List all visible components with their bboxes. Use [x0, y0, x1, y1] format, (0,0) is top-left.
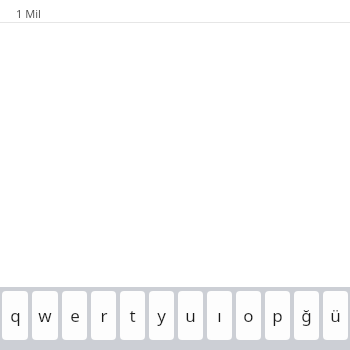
button[interactable]: 1 Mil: [0, 5, 350, 22]
staticText: u: [185, 304, 196, 327]
button[interactable]: r: [91, 291, 116, 340]
staticText: q: [10, 304, 21, 327]
button[interactable]: ü: [323, 291, 348, 340]
button[interactable]: t: [120, 291, 145, 340]
button[interactable]: o: [236, 291, 261, 340]
button[interactable]: ı: [207, 291, 232, 340]
staticText: ü: [330, 304, 341, 327]
button[interactable]: p: [265, 291, 290, 340]
button[interactable]: q: [2, 291, 28, 340]
staticText: t: [129, 304, 136, 327]
staticText: r: [100, 304, 108, 327]
staticText: y: [157, 304, 166, 327]
staticText: 1 Mil: [16, 6, 41, 21]
staticText: p: [272, 304, 283, 327]
staticText: ğ: [301, 304, 312, 327]
staticText: o: [243, 304, 254, 327]
staticText: ı: [217, 304, 222, 327]
button[interactable]: ğ: [294, 291, 319, 340]
button[interactable]: w: [32, 291, 58, 340]
staticText: w: [38, 304, 52, 327]
button[interactable]: e: [62, 291, 87, 340]
button[interactable]: u: [178, 291, 203, 340]
button[interactable]: y: [149, 291, 174, 340]
staticText: e: [70, 304, 80, 327]
